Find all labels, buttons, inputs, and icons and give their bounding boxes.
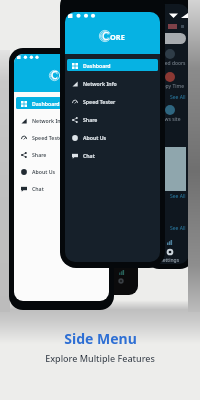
staticText: Network Info [83,80,117,87]
button[interactable]: Dashboard [67,59,158,71]
button[interactable]: Chat [16,182,107,194]
staticText: Explore Multiple Features [45,352,155,364]
staticText: See All [170,94,186,101]
button[interactable]: Chat [67,149,158,161]
staticText: Speed Tester [32,134,65,141]
button[interactable]: Share [16,148,107,160]
button[interactable]: Network Info [16,114,107,126]
staticText: Chat [32,185,44,192]
staticText: Chat [83,152,95,159]
button[interactable]: Speed Tester [67,95,158,107]
staticText: Side Menu [64,329,137,348]
staticText: ORE [110,32,125,42]
staticText: Share [32,151,47,158]
staticText: See All [170,193,186,200]
button[interactable]: Speed Tester [16,131,107,143]
staticText: C [51,68,58,82]
staticText: Speed Tester [83,98,116,105]
staticText: Dashboard [32,100,60,107]
staticText: About Us [83,134,107,141]
button[interactable]: About Us [67,131,158,143]
button[interactable]: About Us [16,165,107,177]
staticText: C [102,28,109,43]
staticText: Locked doors [154,60,186,67]
staticText: Network Info [32,117,66,124]
button[interactable]: Network Info [67,77,158,89]
staticText: About Us [32,168,56,175]
staticText: Share [83,116,98,123]
staticText: ORE [59,71,74,81]
staticText: News site [158,116,181,123]
button[interactable]: Dashboard [16,97,107,109]
button[interactable]: Share [67,113,158,125]
staticText: Happy Time [156,83,184,90]
staticText: Settings [160,257,180,264]
staticText: See All [170,225,186,232]
staticText: Dashboard [83,62,111,69]
